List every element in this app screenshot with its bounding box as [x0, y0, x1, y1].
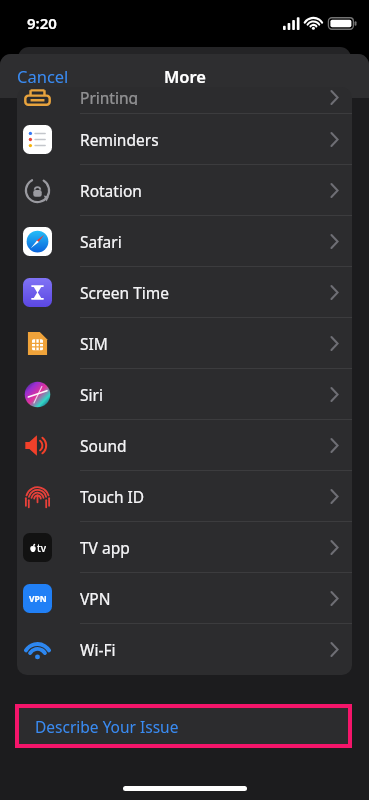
- staticText: tv: [37, 541, 47, 555]
- button[interactable]: Printing: [17, 87, 352, 114]
- staticText: SIM: [80, 333, 108, 354]
- staticText: VPN: [80, 588, 111, 609]
- staticText: Wi-Fi: [80, 639, 116, 660]
- button[interactable]: Rotation: [17, 165, 352, 216]
- button[interactable]: VPN: [17, 573, 352, 624]
- staticText: Reminders: [80, 129, 159, 150]
- staticText: Safari: [80, 231, 122, 252]
- button[interactable]: SIM: [17, 318, 352, 369]
- button[interactable]: Touch ID: [17, 471, 352, 522]
- button[interactable]: Wi-Fi: [17, 624, 352, 675]
- staticText: More: [164, 65, 206, 87]
- staticText: VPN: [29, 593, 47, 605]
- staticText: Printing: [80, 87, 139, 105]
- button[interactable]: Describe Your Issue: [19, 708, 348, 744]
- staticText: TV app: [80, 537, 130, 558]
- button[interactable]: Siri: [17, 369, 352, 420]
- staticText: Sound: [80, 435, 127, 456]
- staticText: Screen Time: [80, 282, 169, 303]
- staticText: Rotation: [80, 180, 142, 201]
- staticText: Siri: [80, 384, 103, 405]
- staticText: Cancel: [17, 65, 69, 87]
- staticText: Touch ID: [80, 486, 145, 507]
- button[interactable]: Reminders: [17, 114, 352, 165]
- staticText: 9:20: [27, 13, 57, 33]
- button[interactable]: Cancel: [0, 56, 86, 96]
- button[interactable]: Sound: [17, 420, 352, 471]
- staticText: Describe Your Issue: [35, 716, 179, 737]
- button[interactable]: tv: [17, 522, 352, 573]
- button[interactable]: Safari: [17, 216, 352, 267]
- button[interactable]: Screen Time: [17, 267, 352, 318]
